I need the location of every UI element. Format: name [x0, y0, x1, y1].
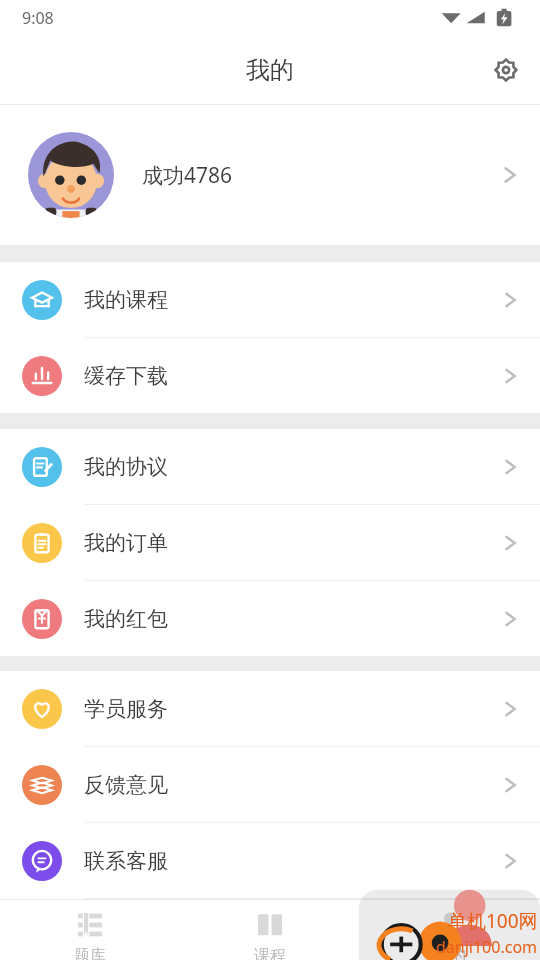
button[interactable]: 题库: [0, 900, 180, 960]
staticText: 9:08: [22, 7, 54, 29]
button[interactable]: 学员服务: [0, 671, 540, 746]
staticText: 我的订单: [84, 530, 168, 556]
staticText: 我的: [246, 55, 294, 85]
button[interactable]: 我的订单: [0, 505, 540, 580]
staticText: 反馈意见: [84, 772, 168, 798]
button[interactable]: 联系客服: [0, 823, 540, 898]
staticText: 成功4786: [142, 161, 233, 190]
staticText: 我的协议: [84, 454, 168, 480]
staticText: 我的课程: [84, 287, 168, 313]
staticText: 我的: [434, 946, 466, 960]
button[interactable]: Settings: [482, 46, 530, 94]
button[interactable]: 我的红包: [0, 581, 540, 656]
button[interactable]: 缓存下载: [0, 338, 540, 413]
staticText: 单机100网: [448, 908, 538, 934]
button[interactable]: 成功4786: [0, 105, 540, 245]
staticText: 我的红包: [84, 606, 168, 632]
staticText: danji100.com: [436, 936, 538, 958]
button[interactable]: 课程: [180, 900, 360, 960]
button[interactable]: 反馈意见: [0, 747, 540, 822]
button[interactable]: 我的: [360, 900, 540, 960]
button[interactable]: 我的课程: [0, 262, 540, 337]
button[interactable]: 我的协议: [0, 429, 540, 504]
staticText: 缓存下载: [84, 363, 168, 389]
staticText: 课程: [254, 946, 286, 960]
staticText: 学员服务: [84, 696, 168, 722]
staticText: 题库: [74, 946, 106, 960]
staticText: 联系客服: [84, 848, 168, 874]
